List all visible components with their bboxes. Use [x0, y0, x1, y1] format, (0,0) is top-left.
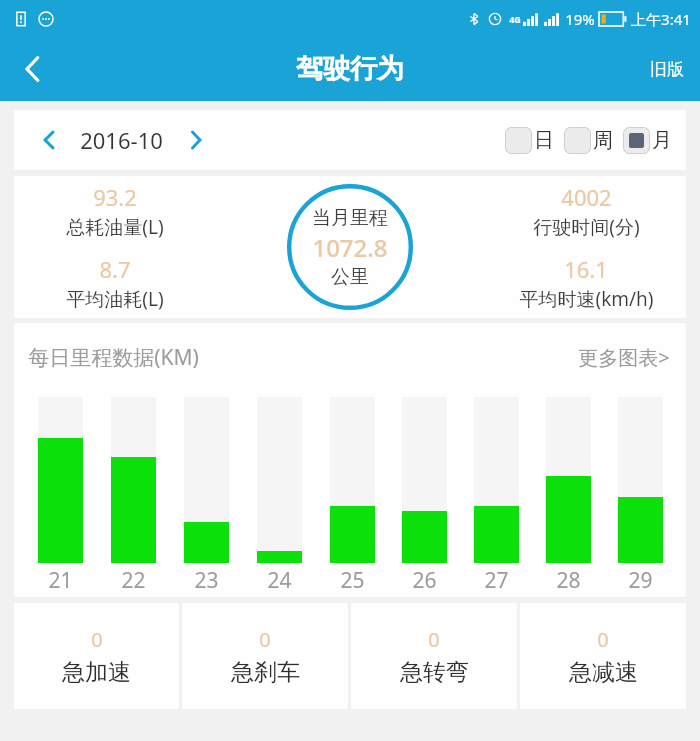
staticText: 行驶时间(分) [533, 214, 640, 240]
staticText: 4G [509, 13, 521, 25]
staticText: 每日里程数据(KM) [28, 343, 199, 372]
staticText: 上午3:41 [631, 9, 691, 29]
staticText: 1072.8 [312, 231, 388, 264]
staticText: 0 [428, 626, 440, 653]
staticText: 19% [565, 9, 595, 29]
staticText: 24 [267, 566, 292, 595]
staticText: 4002 [561, 182, 612, 212]
staticText: 月 [652, 128, 672, 153]
staticText: 26 [412, 566, 437, 595]
staticText: 27 [484, 566, 509, 595]
staticText: 总耗油量(L) [66, 214, 164, 240]
staticText: 8.7 [99, 254, 131, 284]
staticText: 0 [597, 626, 609, 653]
staticText: 29 [628, 566, 653, 595]
button[interactable]: Next month [179, 123, 213, 157]
staticText: 旧版 [650, 59, 684, 80]
button[interactable]: 更多图表> [576, 342, 672, 373]
button[interactable]: 0 [520, 603, 686, 709]
button[interactable]: Previous month [32, 123, 66, 157]
button[interactable]: 0 [351, 603, 517, 709]
staticText: 21 [48, 566, 73, 595]
button[interactable]: 日 [503, 125, 556, 156]
staticText: 平均油耗(L) [66, 286, 164, 312]
staticText: 急刹车 [231, 658, 300, 687]
staticText: 22 [121, 566, 146, 595]
button[interactable]: 0 [14, 603, 179, 709]
staticText: 93.2 [93, 182, 137, 212]
staticText: 日 [534, 128, 554, 153]
staticText: 16.1 [564, 254, 608, 284]
staticText: 当月里程 [312, 206, 388, 230]
staticText: 更多图表> [578, 344, 670, 371]
button[interactable]: 0 [182, 603, 348, 709]
staticText: 0 [259, 626, 271, 653]
staticText: 23 [194, 566, 219, 595]
staticText: 平均时速(km/h) [519, 286, 654, 312]
staticText: 驾驶行为 [296, 52, 404, 86]
staticText: 25 [340, 566, 365, 595]
button[interactable]: 周 [562, 125, 615, 156]
staticText: 急减速 [569, 658, 638, 687]
staticText: 周 [593, 128, 613, 153]
staticText: 急加速 [62, 658, 131, 687]
staticText: 0 [91, 626, 103, 653]
staticText: 公里 [331, 265, 369, 289]
button[interactable]: 月 [621, 125, 674, 156]
staticText: 急转弯 [400, 658, 469, 687]
staticText: 2016-10 [80, 125, 163, 155]
staticText: 28 [556, 566, 581, 595]
button[interactable]: Back [0, 37, 66, 101]
button[interactable]: 旧版 [634, 37, 700, 101]
